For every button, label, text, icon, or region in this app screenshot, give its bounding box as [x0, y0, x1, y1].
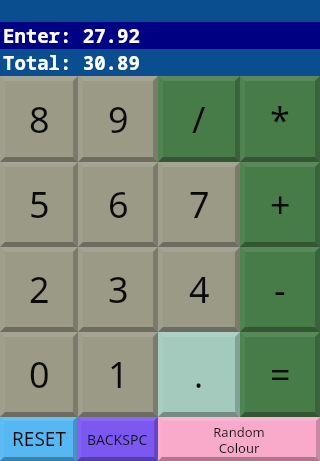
button[interactable]: 5 [0, 162, 78, 247]
button[interactable]: = [240, 332, 320, 417]
staticText: Enter: 27.92 [3, 23, 140, 49]
staticText: RESET [12, 426, 66, 452]
staticText: = [270, 350, 291, 399]
button[interactable]: 8 [0, 76, 78, 162]
button[interactable]: / [158, 76, 240, 162]
button[interactable]: 0 [0, 332, 78, 417]
staticText: 9 [108, 95, 129, 144]
button[interactable]: 6 [78, 162, 158, 247]
staticText: 8 [29, 95, 50, 144]
staticText: 1 [108, 350, 129, 399]
staticText: / [192, 95, 206, 144]
staticText: 6 [108, 180, 129, 229]
staticText: Total: 30.89 [3, 50, 140, 76]
button[interactable]: - [240, 247, 320, 332]
button[interactable]: * [240, 76, 320, 162]
button[interactable]: + [240, 162, 320, 247]
button[interactable]: 1 [78, 332, 158, 417]
staticText: . [194, 352, 204, 398]
staticText: * [270, 95, 290, 144]
staticText: 7 [189, 180, 210, 229]
staticText: 2 [29, 265, 50, 314]
button[interactable]: Random Colour [158, 417, 320, 461]
button[interactable]: 4 [158, 247, 240, 332]
staticText: 0 [29, 350, 50, 399]
button[interactable]: 3 [78, 247, 158, 332]
button[interactable]: RESET [0, 417, 77, 461]
button[interactable]: . [158, 332, 240, 417]
staticText: - [274, 265, 286, 314]
staticText: + [270, 180, 291, 229]
button[interactable]: 9 [78, 76, 158, 162]
staticText: BACKSPC [87, 430, 148, 449]
button[interactable]: BACKSPC [77, 417, 158, 461]
staticText: 4 [189, 265, 210, 314]
staticText: Random Colour [213, 423, 265, 456]
staticText: 3 [108, 265, 129, 314]
button[interactable]: 2 [0, 247, 78, 332]
button[interactable]: 7 [158, 162, 240, 247]
staticText: 5 [29, 180, 50, 229]
